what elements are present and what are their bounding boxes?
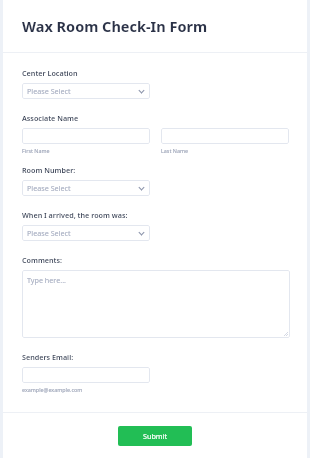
staticText: Comments: bbox=[22, 255, 63, 265]
staticText: Room Number: bbox=[22, 165, 76, 175]
staticText: Please Select bbox=[27, 183, 138, 193]
button[interactable] bbox=[22, 367, 150, 383]
staticText: When I arrived, the room was: bbox=[22, 210, 128, 220]
staticText: Please Select bbox=[27, 86, 138, 96]
staticText: Senders Email: bbox=[22, 352, 74, 362]
staticText: Center Location bbox=[22, 68, 78, 78]
button[interactable] bbox=[22, 128, 150, 144]
staticText: example@example.com bbox=[22, 386, 83, 393]
staticText: Type here... bbox=[27, 275, 67, 285]
staticText: Submit bbox=[143, 431, 167, 441]
staticText: Last Name bbox=[161, 147, 188, 154]
staticText: Associate Name bbox=[22, 113, 79, 123]
staticText: First Name bbox=[22, 147, 50, 154]
button[interactable] bbox=[161, 128, 289, 144]
button[interactable]: Type here... bbox=[22, 270, 290, 338]
staticText: Wax Room Check-In Form bbox=[22, 16, 208, 36]
button[interactable]: Submit bbox=[118, 426, 192, 446]
staticText: Please Select bbox=[27, 228, 138, 238]
button[interactable]: Please Select bbox=[22, 225, 150, 241]
button[interactable]: Please Select bbox=[22, 83, 150, 99]
button[interactable]: Please Select bbox=[22, 180, 150, 196]
